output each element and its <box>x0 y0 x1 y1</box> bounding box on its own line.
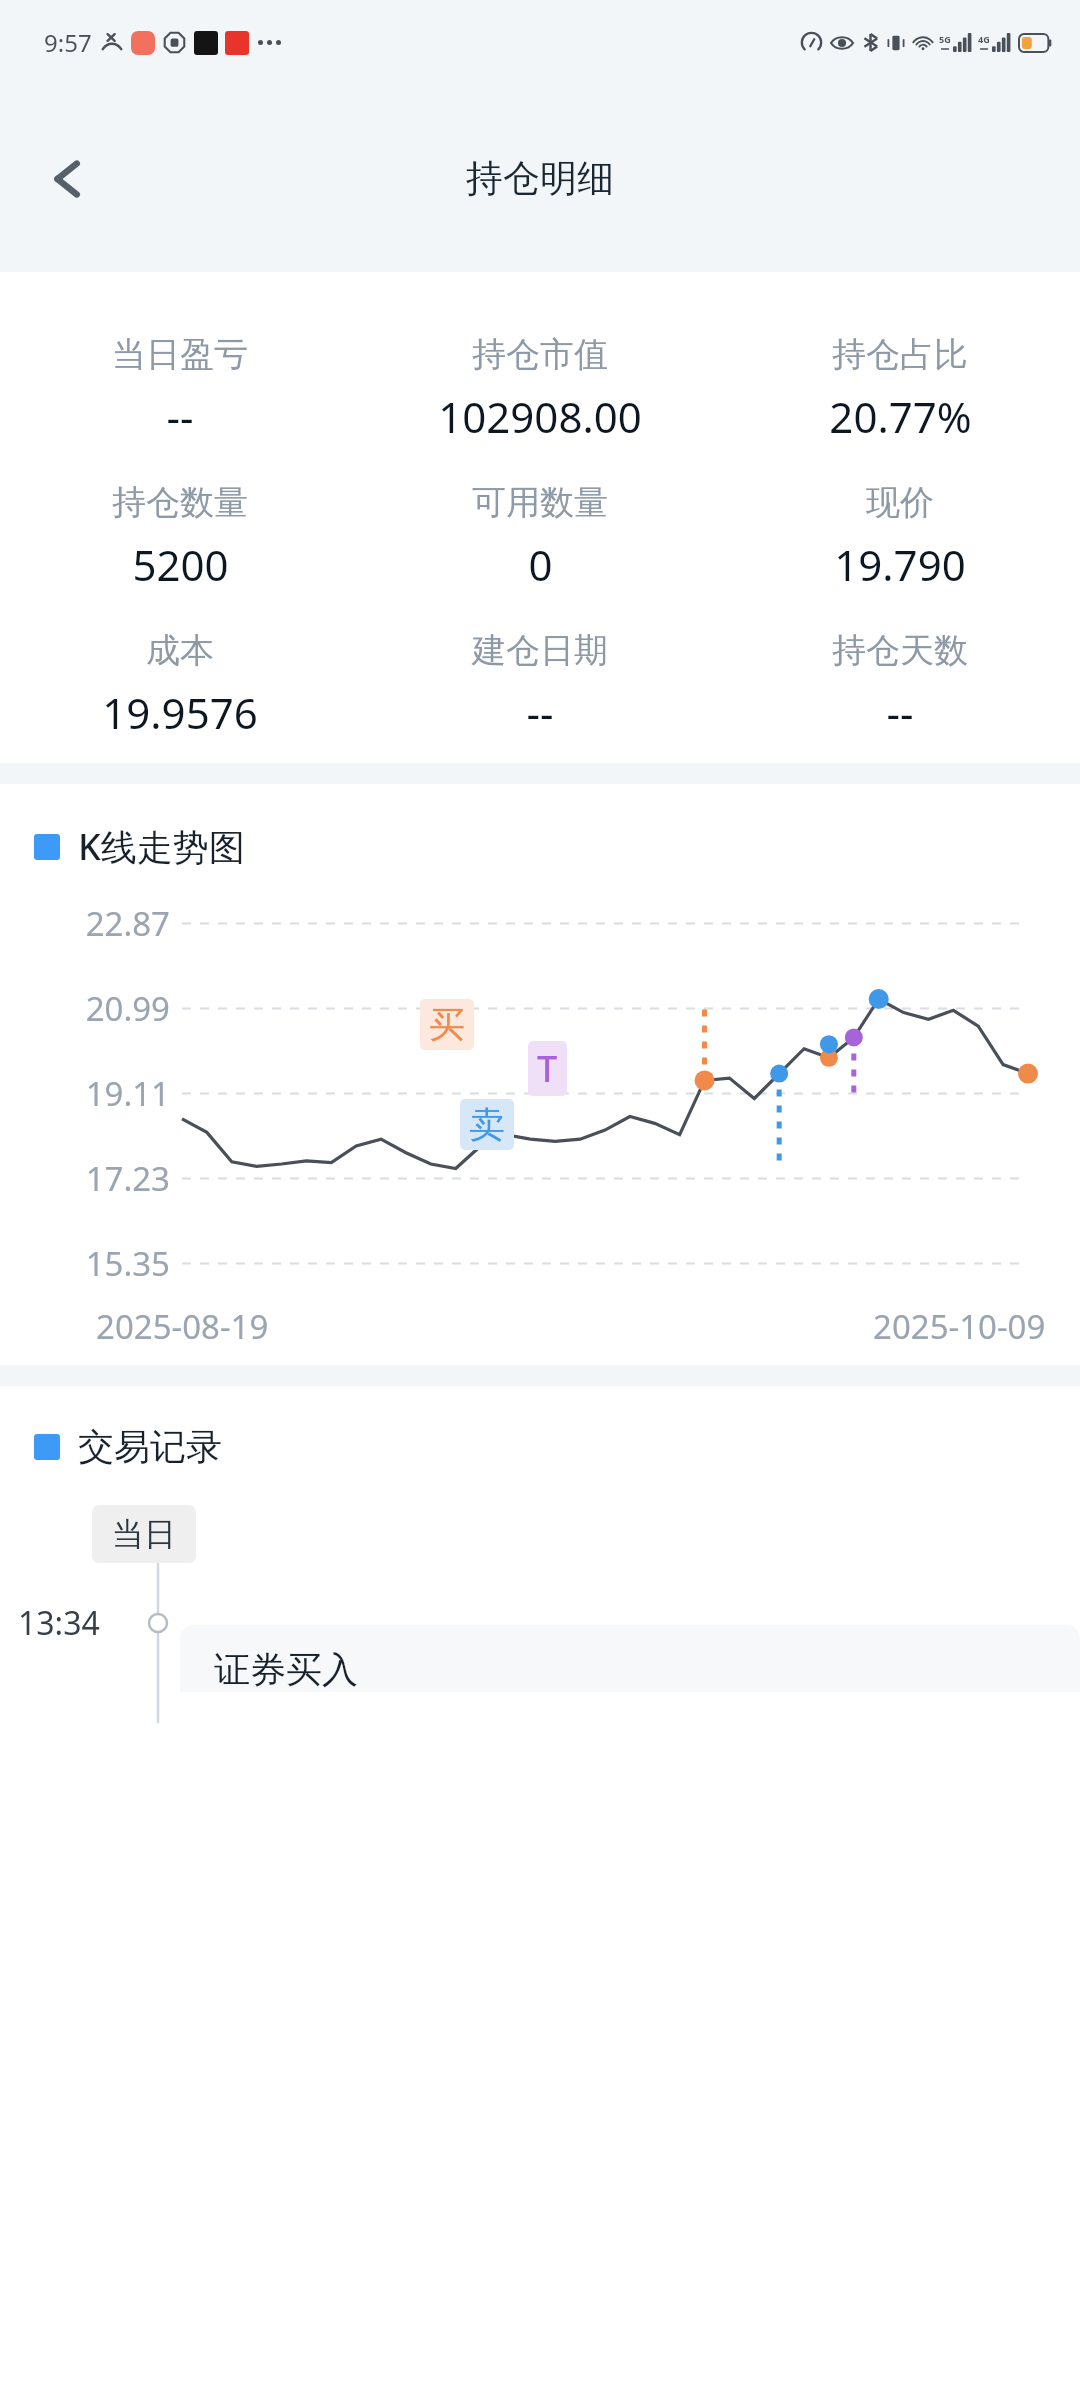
staticText: 19.790 <box>834 536 966 593</box>
staticText: 4G <box>978 33 990 45</box>
staticText: 19.9576 <box>102 684 258 741</box>
staticText: 19.11 <box>10 1071 170 1116</box>
staticText: 0 <box>528 536 553 593</box>
staticText: -- <box>166 388 194 445</box>
staticText: 20.99 <box>10 986 170 1031</box>
staticText: 13:34 <box>18 1601 100 1645</box>
button[interactable]: Back <box>26 137 110 221</box>
staticText: 建仓日期 <box>472 629 608 672</box>
staticText: 持仓天数 <box>832 629 968 672</box>
staticText: 持仓占比 <box>832 333 968 376</box>
staticText: 可用数量 <box>472 481 608 524</box>
staticText: T <box>537 1044 558 1093</box>
staticText: 买 <box>429 1002 465 1047</box>
staticText: 交易记录 <box>78 1424 222 1469</box>
staticText: 持仓市值 <box>472 333 608 376</box>
staticText: 17.23 <box>10 1156 170 1201</box>
staticText: -- <box>886 684 914 741</box>
staticText: 22.87 <box>10 901 170 946</box>
staticText: 9:57 <box>44 26 92 59</box>
staticText: K线走势图 <box>78 822 245 871</box>
staticText: 5G <box>939 33 951 45</box>
staticText: 2025-08-19 <box>96 1304 269 1349</box>
staticText: 当日 <box>112 1514 176 1554</box>
staticText: 20.77% <box>829 388 972 445</box>
staticText: 持仓明细 <box>466 155 614 202</box>
staticText: -- <box>526 684 554 741</box>
staticText: 持仓数量 <box>112 481 248 524</box>
staticText: 证券买入 <box>214 1647 358 1692</box>
staticText: 5200 <box>132 536 229 593</box>
staticText: 102908.00 <box>438 388 642 445</box>
staticText: 卖 <box>469 1102 505 1147</box>
staticText: 现价 <box>866 481 934 524</box>
staticText: 15.35 <box>10 1241 170 1286</box>
staticText: 2025-10-09 <box>873 1304 1046 1349</box>
staticText: 成本 <box>146 629 214 672</box>
staticText: 当日盈亏 <box>112 333 248 376</box>
button[interactable]: 证券买入 <box>180 1625 1080 1692</box>
